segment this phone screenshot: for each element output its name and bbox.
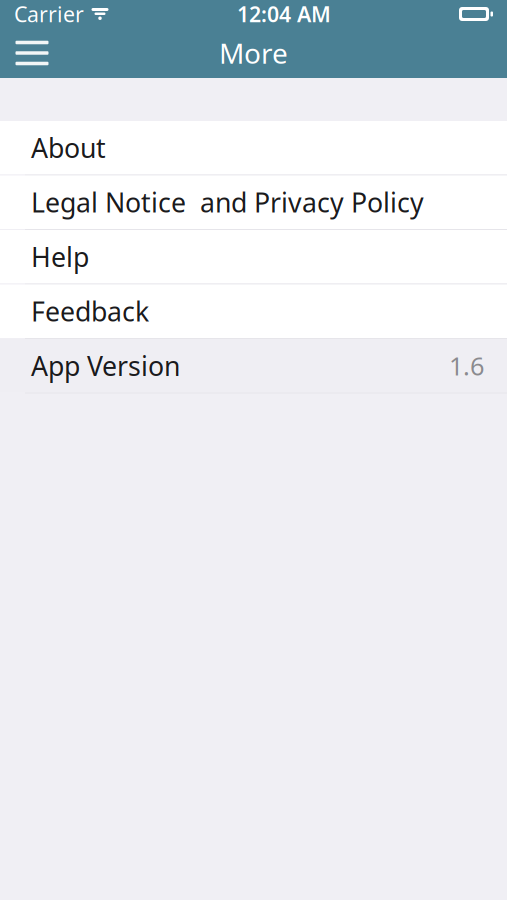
button[interactable]: Menu — [6, 28, 58, 78]
button[interactable]: Feedback — [0, 284, 507, 338]
staticText: Help — [31, 239, 89, 274]
staticText: Legal Notice and Privacy Policy — [31, 184, 424, 220]
staticText: More — [219, 34, 288, 72]
staticText: Feedback — [31, 293, 149, 329]
button[interactable]: About — [0, 121, 507, 174]
staticText: 12:04 AM — [237, 0, 331, 28]
button[interactable]: Help — [0, 230, 507, 283]
staticText: 1.6 — [449, 349, 484, 382]
staticText: About — [31, 130, 106, 165]
staticText: App Version — [31, 348, 180, 383]
button[interactable]: App Version — [0, 339, 507, 392]
staticText: Carrier — [14, 0, 84, 28]
button[interactable]: Legal Notice and Privacy Policy — [0, 175, 507, 229]
